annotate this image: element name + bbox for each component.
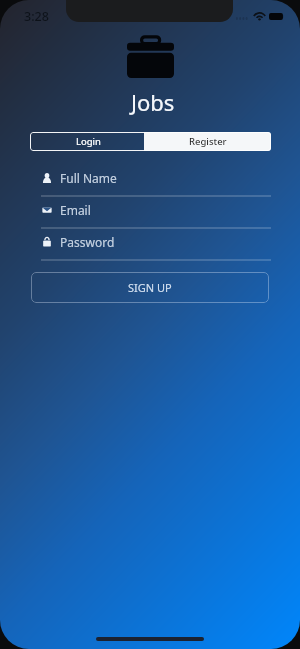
staticText: Full Name <box>60 170 117 186</box>
staticText: 3:28 <box>24 8 49 25</box>
other: Jobs logo <box>127 34 174 78</box>
staticText: Login <box>76 135 101 148</box>
button[interactable]: Full Name <box>29 162 270 193</box>
staticText: Register <box>189 135 227 148</box>
button[interactable]: Password <box>29 226 270 257</box>
staticText: Jobs <box>131 87 175 117</box>
staticText: SIGN UP <box>128 280 172 295</box>
button[interactable]: Email <box>29 194 270 225</box>
button[interactable]: Login <box>30 132 144 151</box>
button[interactable]: Register <box>144 132 271 151</box>
staticText: Email <box>60 202 91 218</box>
button[interactable]: SIGN UP <box>31 272 269 303</box>
staticText: Password <box>60 234 115 250</box>
